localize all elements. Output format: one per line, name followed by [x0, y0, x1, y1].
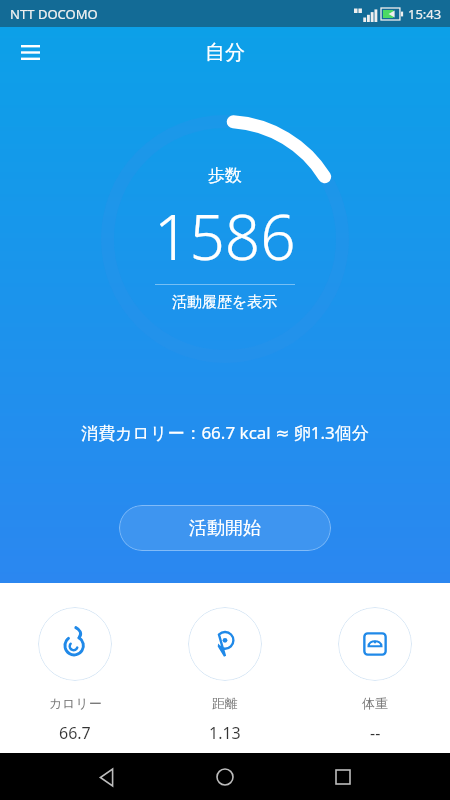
- button[interactable]: Recents: [321, 755, 365, 799]
- staticText: 消費カロリー：66.7 kcal ≈ 卵1.3個分: [81, 421, 369, 444]
- staticText: 活動履歴を表示: [172, 293, 278, 312]
- button[interactable]: 活動履歴を表示: [168, 292, 282, 313]
- button[interactable]: Home: [203, 755, 247, 799]
- staticText: --: [370, 722, 381, 744]
- staticText: 66.7: [59, 722, 91, 744]
- button[interactable]: Weight: [300, 583, 450, 744]
- button[interactable]: Calories: [0, 583, 150, 744]
- other: Calories: [38, 607, 112, 681]
- staticText: 15:43: [408, 5, 442, 23]
- button[interactable]: Back: [85, 755, 129, 799]
- button[interactable]: Distance: [150, 583, 300, 744]
- staticText: 自分: [205, 40, 245, 65]
- staticText: 1.13: [209, 722, 241, 744]
- staticText: 活動開始: [189, 517, 261, 540]
- staticText: 距離: [212, 695, 238, 711]
- staticText: 歩数: [208, 165, 242, 186]
- staticText: カロリー: [49, 695, 102, 711]
- other: Weight: [338, 607, 412, 681]
- staticText: 1586: [154, 194, 296, 278]
- button[interactable]: 活動開始: [119, 505, 331, 551]
- staticText: NTT DOCOMO: [10, 5, 98, 23]
- button[interactable]: Menu: [8, 30, 52, 74]
- staticText: 体重: [362, 695, 388, 711]
- other: Distance: [188, 607, 262, 681]
